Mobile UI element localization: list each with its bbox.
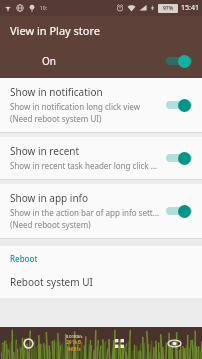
staticText: (Need reboot system UI) <box>10 113 102 124</box>
button[interactable]: Show in app info <box>0 184 202 239</box>
staticText: 4KB/s <box>68 346 81 352</box>
button[interactable]: Toggle <box>166 98 192 112</box>
staticText: Show in notification long click view <box>10 101 140 112</box>
staticText: 291kB <box>66 339 82 346</box>
button[interactable]: Back <box>0 327 56 359</box>
button[interactable]: View in Play store <box>0 16 202 44</box>
staticText: 97% <box>163 5 174 12</box>
staticText: Show in app info <box>10 191 89 205</box>
staticText: Reboot system UI <box>10 275 93 289</box>
staticText: Show in notification <box>10 85 103 99</box>
staticText: View in Play store <box>10 23 100 38</box>
staticText: 10: <box>40 5 48 12</box>
button[interactable]: Toggle <box>166 204 192 218</box>
staticText: Show in recent <box>10 144 80 158</box>
button[interactable]: Show in recent <box>0 137 202 180</box>
staticText: 15:41 <box>181 3 199 13</box>
staticText: Show in recent task header long click vi… <box>10 160 160 171</box>
staticText: Show in the action bar of app info setti… <box>10 207 160 218</box>
button[interactable]: Show in notification <box>0 78 202 133</box>
staticText: On <box>42 54 56 68</box>
button[interactable]: Recents <box>147 327 202 359</box>
button[interactable]: Toggle <box>166 151 192 165</box>
staticText: 0.01KB/s <box>66 334 83 339</box>
staticText: (Need reboot system) <box>10 219 91 230</box>
button[interactable]: On <box>0 44 202 78</box>
button[interactable]: Reboot system UI <box>0 273 202 298</box>
button[interactable]: Home <box>92 327 147 359</box>
staticText: Reboot <box>10 253 38 264</box>
button[interactable]: Toggle <box>166 54 192 68</box>
